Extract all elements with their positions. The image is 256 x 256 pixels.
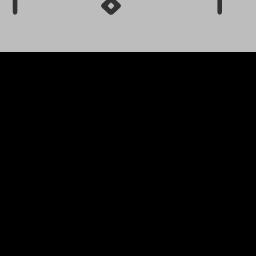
button[interactable]: More [216,0,224,24]
button[interactable]: Back [11,0,19,24]
button[interactable]: Markers [98,0,124,20]
